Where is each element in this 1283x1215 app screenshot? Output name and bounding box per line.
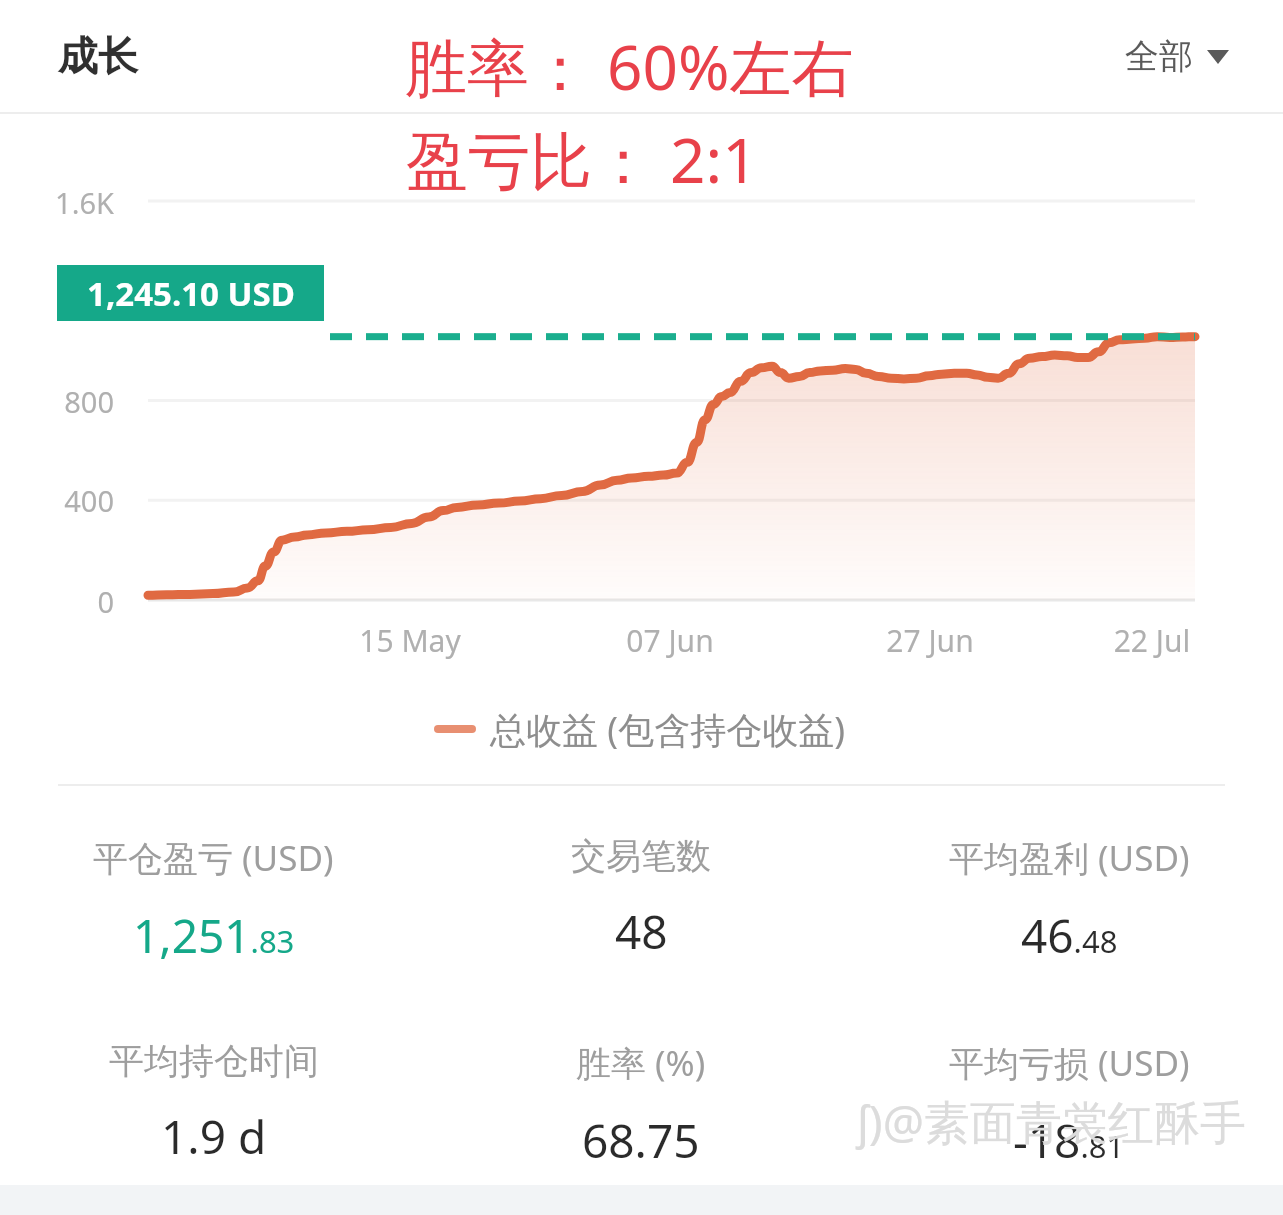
staticText: 800 [0, 382, 114, 421]
staticText: 1,245.10 USD [87, 271, 295, 316]
staticText: 15 May [320, 620, 500, 661]
button[interactable]: 全部 [1117, 29, 1237, 84]
staticText: 平均持仓时间 [109, 1039, 319, 1083]
staticText: 盈亏比： 2:1 [406, 117, 758, 202]
staticText: 68.75 [582, 1109, 700, 1172]
button[interactable]: 胜率 (%) [427, 1033, 855, 1178]
button[interactable]: 平均持仓时间 [0, 1033, 427, 1174]
staticText: 48 [615, 900, 668, 963]
staticText: 22 Jul [1062, 620, 1242, 661]
button[interactable]: 交易笔数 [427, 828, 855, 969]
staticText: 1.9 d [161, 1105, 267, 1168]
staticText: 平均亏损 (USD) [949, 1039, 1190, 1087]
staticText: 胜率： 60%左右 [405, 24, 854, 109]
staticText: 07 Jun [580, 620, 760, 661]
staticText: 27 Jun [840, 620, 1020, 661]
button[interactable]: 平仓盈亏 (USD) [0, 828, 427, 973]
staticText: 46.48 [1021, 904, 1118, 967]
button[interactable]: 平均亏损 (USD) [855, 1033, 1283, 1178]
staticText: 1,251.83 [133, 904, 295, 967]
staticText: 平均盈利 (USD) [949, 834, 1190, 882]
staticText: 400 [0, 481, 114, 520]
staticText: 全部 [1125, 35, 1193, 78]
staticText: 胜率 (%) [576, 1039, 706, 1087]
staticText: -18.81 [1013, 1109, 1125, 1172]
staticText: 交易笔数 [571, 834, 711, 878]
staticText: 平仓盈亏 (USD) [93, 834, 334, 882]
button[interactable]: 平均盈利 (USD) [855, 828, 1283, 973]
staticText: 1.6K [0, 183, 114, 222]
staticText: ʃ)@素面青裳红酥手 [857, 1090, 1247, 1153]
staticText: 0 [0, 582, 114, 621]
button[interactable]: 1,245.10 USD [57, 265, 324, 321]
staticText: 成长 [58, 31, 138, 81]
staticText: 总收益 (包含持仓收益) [490, 705, 845, 754]
